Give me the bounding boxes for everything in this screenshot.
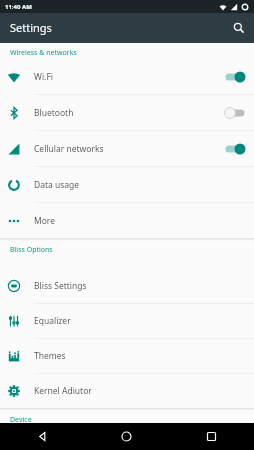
button[interactable] <box>169 423 254 450</box>
button[interactable]: Wi.Fi <box>0 59 254 94</box>
button[interactable]: Data usage <box>0 167 254 202</box>
staticText: Wireless & networks <box>10 48 77 58</box>
button[interactable]: Equalizer <box>0 304 254 338</box>
staticText: 11:40 AM <box>5 3 32 11</box>
button[interactable] <box>0 423 84 450</box>
button[interactable] <box>224 13 254 43</box>
staticText: Equalizer <box>34 315 71 327</box>
button[interactable] <box>84 423 169 450</box>
staticText: Cellular networks <box>34 143 104 155</box>
staticText: More <box>34 215 55 227</box>
staticText: Device <box>10 415 32 423</box>
staticText: Bliss Options <box>10 245 53 255</box>
button[interactable]: Bliss Settings <box>0 269 254 303</box>
button[interactable]: More <box>0 203 254 238</box>
button[interactable]: Themes <box>0 339 254 373</box>
staticText: Kernel Adiutor <box>34 385 92 397</box>
staticText: Bluetooth <box>34 107 74 119</box>
staticText: Wi.Fi <box>34 71 53 83</box>
button[interactable]: Cellular networks <box>0 131 254 166</box>
button[interactable]: Kernel Adiutor <box>0 374 254 408</box>
staticText: Settings <box>10 20 52 35</box>
staticText: Themes <box>34 350 66 362</box>
staticText: Data usage <box>34 179 80 191</box>
staticText: Bliss Settings <box>34 280 87 292</box>
button[interactable]: Bluetooth <box>0 95 254 130</box>
